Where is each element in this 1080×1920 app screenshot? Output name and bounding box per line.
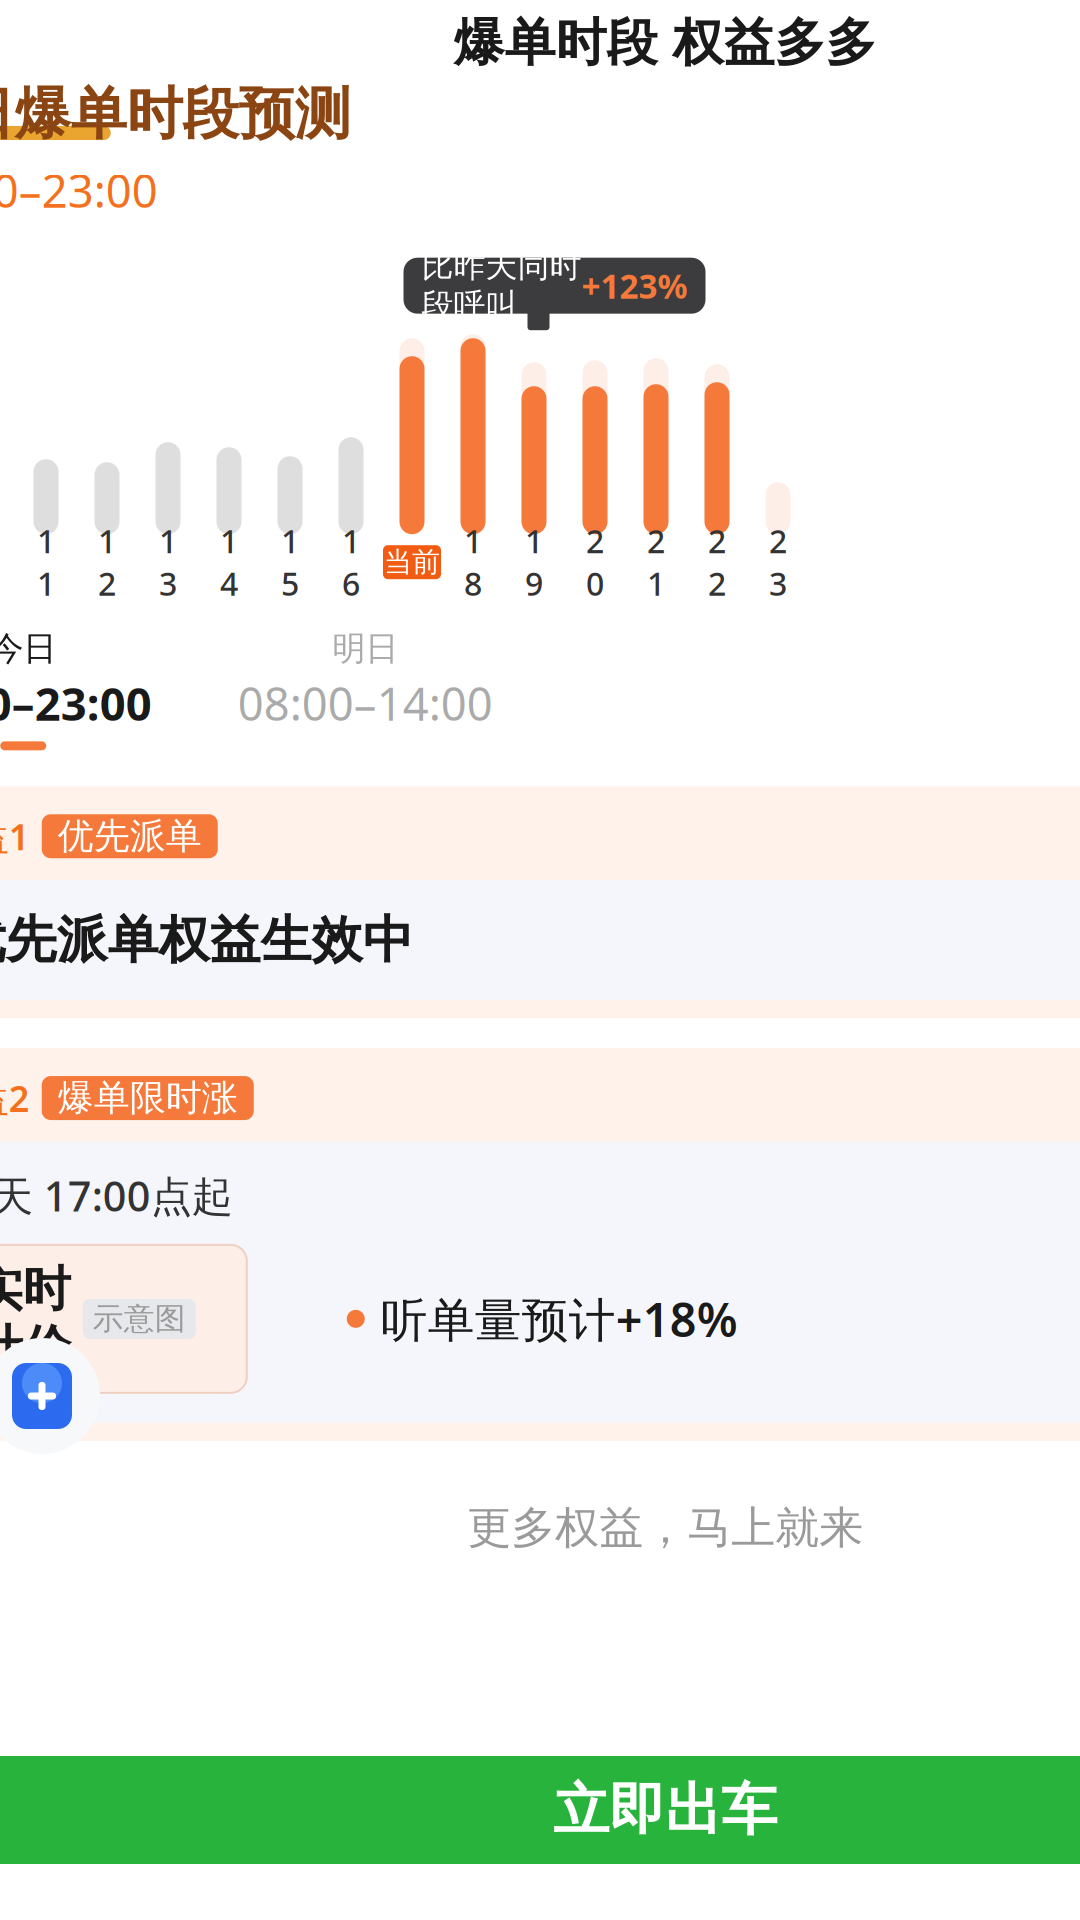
staticText: 14: [220, 520, 238, 605]
staticText: 21: [647, 520, 665, 605]
staticText: 17:00–23:00: [0, 673, 152, 733]
staticText: 11: [37, 520, 55, 605]
staticText: 今日爆单时段预测: [0, 80, 351, 148]
staticText: 今日: [0, 628, 56, 669]
staticText: 18: [464, 520, 482, 605]
staticText: 权益1: [0, 812, 30, 860]
staticText: 08:00–14:00: [238, 673, 493, 733]
button[interactable]: 明日: [228, 628, 503, 750]
staticText: 22: [708, 520, 726, 605]
button[interactable]: 今日: [0, 628, 162, 750]
staticText: 优先派单权益生效中: [0, 909, 414, 971]
button[interactable]: 立即出车: [0, 1756, 1080, 1864]
staticText: 更多权益，马上就来: [467, 1501, 863, 1555]
button[interactable]: Add insurance: [0, 1338, 100, 1454]
staticText: 今天 17:00点起: [0, 1168, 233, 1223]
staticText: 比昨天同时段呼叫: [421, 246, 581, 325]
staticText: 15: [281, 520, 299, 605]
staticText: 19: [525, 520, 543, 605]
staticText: 明日: [332, 628, 398, 669]
staticText: +123%: [581, 264, 687, 308]
staticText: 实时计价: [0, 1260, 71, 1378]
staticText: 12: [98, 520, 116, 605]
staticText: 17:00–23:00: [0, 160, 158, 220]
staticText: 爆单限时涨: [58, 1076, 238, 1120]
staticText: 16: [342, 520, 360, 605]
staticText: 优先派单: [58, 814, 202, 858]
staticText: 示意图: [93, 1300, 186, 1338]
staticText: 立即出车: [553, 1776, 777, 1844]
staticText: 听单量预计+18%: [381, 1288, 738, 1350]
staticText: 13: [159, 520, 177, 605]
staticText: 23: [769, 520, 787, 605]
staticText: 权益2: [0, 1074, 30, 1122]
staticText: 当前: [384, 545, 440, 579]
staticText: 爆单时段 权益多多: [454, 12, 877, 74]
staticText: 20: [586, 520, 604, 605]
